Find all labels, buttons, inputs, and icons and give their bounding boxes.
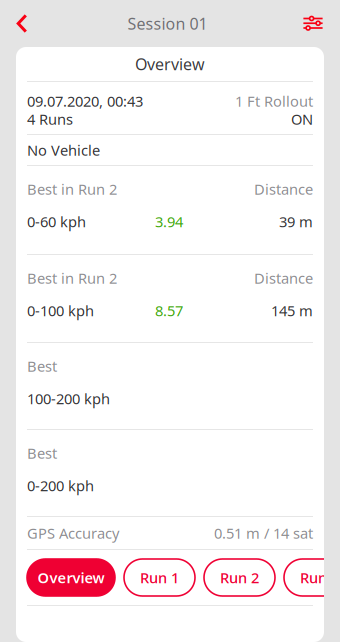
staticText: ON <box>291 109 313 129</box>
staticText: 100-200 kph <box>27 389 110 408</box>
staticText: No Vehicle <box>27 140 100 160</box>
staticText: Distance <box>254 268 313 288</box>
staticText: Distance <box>254 179 313 199</box>
staticText: Session 01 <box>127 13 207 34</box>
staticText: Overview <box>37 568 104 587</box>
staticText: Run 3 <box>300 568 339 587</box>
staticText: 0-60 kph <box>27 212 86 231</box>
staticText: 4 Runs <box>27 109 73 129</box>
staticText: Best in Run 2 <box>27 179 117 199</box>
staticText: GPS Accuracy <box>27 523 119 543</box>
staticText: 0-200 kph <box>27 476 94 495</box>
staticText: 0.51 m / 14 sat <box>214 523 313 543</box>
staticText: Best in Run 2 <box>27 268 117 288</box>
button[interactable]: Run 2 <box>204 559 275 596</box>
button[interactable]: Run 1 <box>124 559 195 596</box>
button[interactable]: Back <box>0 1 44 45</box>
staticText: Run 1 <box>140 568 179 587</box>
staticText: 09.07.2020, 00:43 <box>27 91 143 111</box>
staticText: Best <box>27 356 57 376</box>
staticText: Run 2 <box>220 568 259 587</box>
staticText: 0-100 kph <box>27 301 94 320</box>
button[interactable]: Run 3 <box>284 559 340 596</box>
staticText: 8.57 <box>155 301 183 320</box>
staticText: 39 m <box>279 212 313 231</box>
button[interactable]: Session settings <box>291 1 335 45</box>
staticText: Best <box>27 443 57 463</box>
staticText: Overview <box>135 53 205 75</box>
staticText: 145 m <box>271 301 313 320</box>
staticText: 3.94 <box>155 212 183 231</box>
staticText: 1 Ft Rollout <box>235 91 313 111</box>
button[interactable]: Overview <box>27 559 115 596</box>
